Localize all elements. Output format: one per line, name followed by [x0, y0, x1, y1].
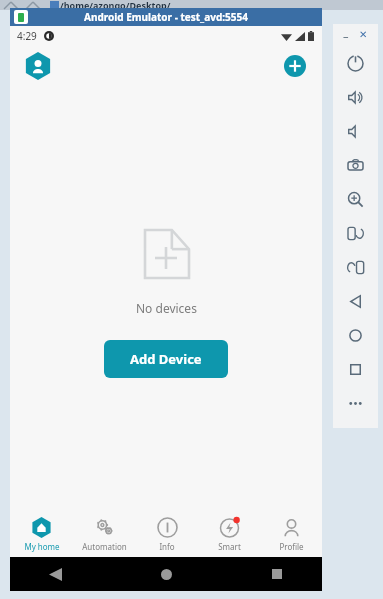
staticText: ✕ [359, 29, 368, 41]
button[interactable]: Info [136, 512, 198, 557]
button[interactable]: Account [23, 51, 53, 81]
button[interactable]: Add [282, 53, 308, 79]
button[interactable]: Screenshot [333, 148, 378, 182]
button[interactable]: Overview [333, 352, 378, 386]
button[interactable]: Volume up [333, 80, 378, 114]
button[interactable]: Rotate right [333, 250, 378, 284]
button[interactable]: Back [40, 559, 70, 589]
button[interactable]: Profile [260, 512, 322, 557]
button[interactable]: Home [151, 559, 181, 589]
staticText: My home [24, 541, 60, 552]
staticText: 4:29 [17, 29, 37, 43]
button[interactable]: More [333, 386, 378, 420]
button[interactable]: Recents [262, 559, 292, 589]
staticText: Add Device [130, 350, 202, 368]
button[interactable]: Home [333, 318, 378, 352]
button[interactable]: Rotate left [333, 216, 378, 250]
button[interactable]: Back [333, 284, 378, 318]
button[interactable]: Volume down [333, 114, 378, 148]
staticText: Android Emulator - test_avd:5554 [84, 10, 248, 24]
button[interactable]: Smart [198, 512, 260, 557]
button[interactable]: Power [333, 46, 378, 80]
staticText: No devices [136, 300, 197, 316]
staticText: – [343, 28, 349, 43]
button[interactable]: My home [10, 512, 73, 557]
staticText: Automation [82, 541, 127, 552]
staticText: /home/azongo/Desktop/ [60, 0, 171, 9]
button[interactable]: Automation [73, 512, 136, 557]
staticText: Profile [279, 541, 304, 552]
staticText: Info [159, 541, 175, 552]
staticText: Smart [218, 541, 241, 552]
button[interactable]: Zoom [333, 182, 378, 216]
button[interactable]: Add Device [104, 340, 228, 378]
